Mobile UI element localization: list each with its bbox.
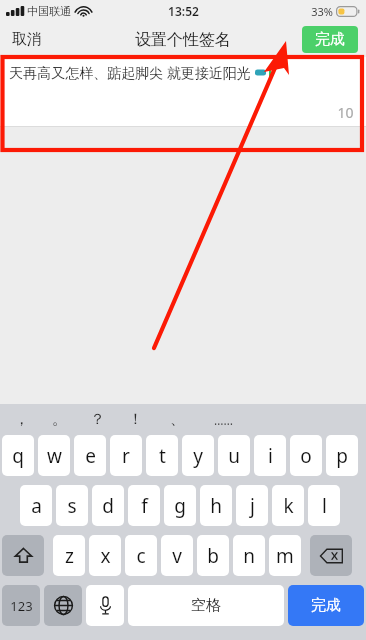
button[interactable]: 。 xyxy=(40,404,78,435)
button[interactable]: x xyxy=(89,535,121,576)
button[interactable]: k xyxy=(272,485,304,526)
button[interactable]: 完成 xyxy=(302,26,358,53)
button[interactable]: z xyxy=(53,535,85,576)
button[interactable]: ， xyxy=(2,404,40,435)
staticText: v xyxy=(172,543,182,569)
staticText: p xyxy=(336,443,348,469)
button[interactable]: h xyxy=(200,485,232,526)
button[interactable]: 取消 xyxy=(0,24,54,55)
button[interactable]: u xyxy=(218,435,250,476)
staticText: q xyxy=(12,443,24,469)
button[interactable]: b xyxy=(197,535,229,576)
staticText: h xyxy=(210,493,222,519)
button[interactable]: ？ xyxy=(78,404,116,435)
staticText: n xyxy=(243,543,255,569)
button[interactable]: …… xyxy=(200,404,246,435)
button[interactable]: d xyxy=(92,485,124,526)
button[interactable]: s xyxy=(56,485,88,526)
staticText: b xyxy=(207,543,219,569)
staticText: i xyxy=(268,443,273,469)
staticText: f xyxy=(141,493,148,519)
button[interactable]: p xyxy=(326,435,358,476)
staticText: ！ xyxy=(128,410,143,429)
staticText: 设置个性签名 xyxy=(135,30,231,50)
button[interactable]: v xyxy=(161,535,193,576)
staticText: …… xyxy=(214,412,233,428)
staticText: s xyxy=(67,493,77,519)
staticText: t xyxy=(159,443,166,469)
staticText: 取消 xyxy=(12,30,42,49)
staticText: 、 xyxy=(170,410,185,429)
staticText: x xyxy=(100,543,111,569)
staticText: 33% xyxy=(311,4,333,19)
staticText: 中国联通 xyxy=(27,4,71,18)
staticText: 空格 xyxy=(191,596,221,615)
button[interactable]: n xyxy=(233,535,265,576)
button[interactable]: ！ xyxy=(116,404,154,435)
button[interactable]: e xyxy=(74,435,106,476)
button[interactable]: g xyxy=(164,485,196,526)
button[interactable]: r xyxy=(110,435,142,476)
button[interactable]: Delete xyxy=(310,535,352,576)
staticText: 。 xyxy=(52,410,67,429)
button[interactable]: y xyxy=(182,435,214,476)
staticText: 123 xyxy=(10,597,33,615)
button[interactable]: a xyxy=(20,485,52,526)
staticText: r xyxy=(122,443,130,469)
staticText: g xyxy=(174,493,186,519)
staticText: j xyxy=(250,493,255,519)
button[interactable]: 天再高又怎样、踮起脚尖 就更接近阳光 xyxy=(0,57,366,126)
staticText: ？ xyxy=(90,410,105,429)
staticText: d xyxy=(102,493,114,519)
button[interactable]: w xyxy=(38,435,70,476)
button[interactable]: 123 xyxy=(2,585,40,626)
button[interactable]: f xyxy=(128,485,160,526)
staticText: z xyxy=(65,543,74,569)
staticText: u xyxy=(228,443,240,469)
button[interactable]: t xyxy=(146,435,178,476)
staticText: o xyxy=(300,443,312,469)
button[interactable]: m xyxy=(269,535,301,576)
staticText: 完成 xyxy=(311,596,341,615)
button[interactable]: l xyxy=(308,485,340,526)
staticText: a xyxy=(31,493,42,519)
staticText: 天再高又怎样、踮起脚尖 就更接近阳光 xyxy=(9,63,251,82)
button[interactable]: 、 xyxy=(154,404,200,435)
staticText: 13:52 xyxy=(168,3,199,19)
staticText: y xyxy=(193,443,203,469)
staticText: m xyxy=(276,543,294,569)
staticText: l xyxy=(322,493,327,519)
button[interactable]: c xyxy=(125,535,157,576)
staticText: 10 xyxy=(337,103,354,122)
button[interactable]: o xyxy=(290,435,322,476)
button[interactable]: 空格 xyxy=(128,585,284,626)
button[interactable]: Switch keyboard xyxy=(44,585,82,626)
staticText: w xyxy=(47,443,62,469)
button[interactable]: Shift xyxy=(2,535,44,576)
button[interactable]: q xyxy=(2,435,34,476)
staticText: 完成 xyxy=(315,30,345,49)
button[interactable]: j xyxy=(236,485,268,526)
staticText: c xyxy=(136,543,146,569)
staticText: e xyxy=(85,443,96,469)
button[interactable]: i xyxy=(254,435,286,476)
button[interactable]: 完成 xyxy=(288,585,364,626)
staticText: ， xyxy=(14,410,29,429)
button[interactable]: Voice input xyxy=(86,585,124,626)
staticText: k xyxy=(283,493,294,519)
